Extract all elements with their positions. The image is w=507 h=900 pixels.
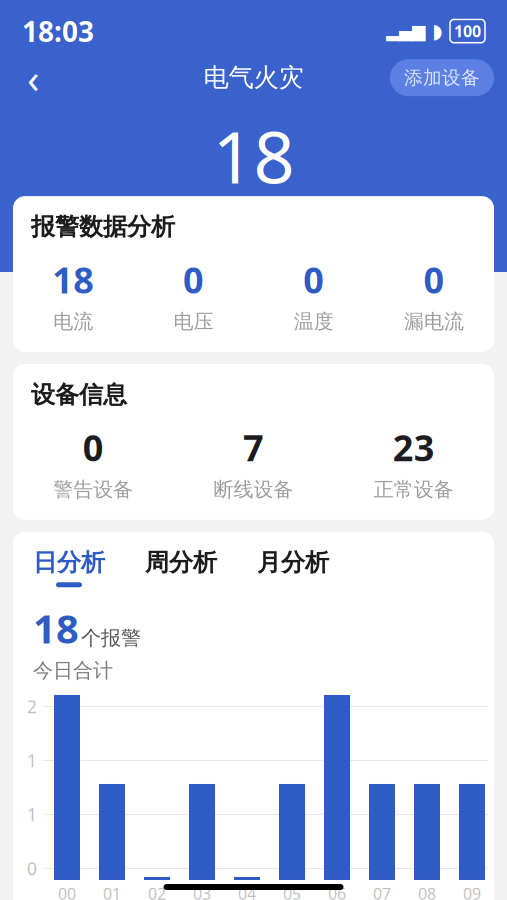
staticText: 0 [303,256,324,303]
staticText: 23 [393,423,435,471]
staticText: 02时 [148,883,166,900]
staticText: 18 [212,108,294,203]
staticText: 正常设备 [374,477,454,502]
staticText: 温度 [294,309,334,334]
staticText: 0 [27,857,37,880]
staticText: 0 [183,256,204,303]
staticText: 06时 [328,883,346,900]
staticText: ▂▄▆ [386,21,425,41]
staticText: 漏电流 [404,309,464,334]
staticText: 2 [27,695,37,718]
staticText: 电气火灾 [203,62,303,93]
staticText: 18:03 [22,12,94,50]
staticText: 7 [243,423,264,471]
staticText: 月分析 [257,548,329,577]
staticText: 1 [27,749,37,772]
staticText: ‹ [27,51,39,104]
staticText: 周分析 [145,548,217,577]
button[interactable]: 周分析 [145,548,217,587]
staticText: 电压 [173,309,213,334]
staticText: 07时 [373,883,391,900]
staticText: 日分析 [33,548,105,577]
staticText: 18 [33,601,79,654]
staticText: 0 [423,256,444,303]
staticText: 警告设备 [53,477,133,502]
staticText: 添加设备 [404,66,480,89]
staticText: 03时 [193,883,211,900]
staticText: 04时 [238,883,256,900]
button[interactable]: 返回 [13,58,53,98]
staticText: 08时 [418,883,436,900]
button[interactable]: 添加设备 [390,59,494,96]
staticText: 断线设备 [213,477,293,502]
staticText: 0 [83,423,104,471]
staticText: 09时 [463,883,481,900]
staticText: 个报警 [81,626,141,650]
staticText: 100 [454,20,481,42]
staticText: ◗ [432,20,443,42]
staticText: 电流 [53,309,93,334]
staticText: 05时 [283,883,301,900]
staticText: 01时 [103,883,121,900]
button[interactable]: 月分析 [257,548,329,587]
staticText: 00时 [58,883,76,900]
button[interactable]: 日分析 [33,548,105,587]
staticText: 1 [27,803,37,826]
staticText: 18 [52,256,94,303]
staticText: 今日合计 [33,658,113,683]
staticText: 报警数据分析 [31,212,175,242]
staticText: 设备信息 [31,380,127,409]
